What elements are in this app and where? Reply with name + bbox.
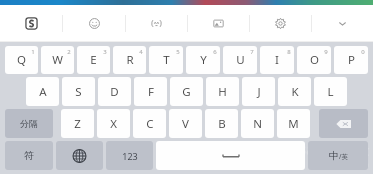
button[interactable]: W <box>41 46 74 74</box>
button[interactable]: X <box>97 109 130 138</box>
staticText: C <box>146 116 154 132</box>
button[interactable]: J <box>242 77 275 106</box>
button[interactable]: Z <box>61 109 94 138</box>
button[interactable]: T <box>149 46 183 74</box>
staticText: 0 <box>361 48 365 56</box>
staticText: P <box>348 52 355 68</box>
staticText: S <box>75 84 82 100</box>
button[interactable]: O <box>297 46 331 74</box>
button[interactable]: F <box>134 77 167 106</box>
button[interactable]: V <box>169 109 202 138</box>
button[interactable]: D <box>98 77 131 106</box>
staticText: M <box>288 116 299 132</box>
staticText: T <box>163 52 170 68</box>
button[interactable]: P <box>334 46 368 74</box>
button[interactable]: Backspace <box>319 109 368 138</box>
button[interactable]: B <box>205 109 238 138</box>
button[interactable]: Kaomoji <box>126 5 187 42</box>
button[interactable]: Sogou input method <box>0 5 62 42</box>
button[interactable]: C <box>133 109 166 138</box>
button[interactable]: 符 <box>5 141 53 170</box>
button[interactable]: 123 <box>106 141 153 170</box>
staticText: 符 <box>24 149 34 162</box>
staticText: Q <box>17 52 26 68</box>
button[interactable]: G <box>170 77 203 106</box>
staticText: /英 <box>339 152 348 161</box>
staticText: 9 <box>324 48 328 56</box>
button[interactable]: N <box>241 109 274 138</box>
staticText: 123 <box>122 150 138 162</box>
button[interactable]: 中 <box>308 141 368 170</box>
button[interactable]: Settings <box>250 5 311 42</box>
button[interactable]: L <box>314 77 347 106</box>
staticText: R <box>126 52 134 68</box>
staticText: G <box>182 84 191 100</box>
staticText: 4 <box>139 48 143 56</box>
staticText: A <box>39 84 47 100</box>
button[interactable]: Emoji <box>63 5 125 42</box>
staticText: I <box>275 52 279 68</box>
staticText: J <box>257 84 261 100</box>
button[interactable]: K <box>278 77 311 106</box>
staticText: W <box>52 52 63 68</box>
staticText: D <box>110 84 119 100</box>
staticText: O <box>310 52 319 68</box>
button[interactable]: R <box>113 46 146 74</box>
staticText: V <box>182 116 189 132</box>
button[interactable]: Y <box>186 46 220 74</box>
button[interactable]: H <box>206 77 239 106</box>
staticText: L <box>327 84 334 100</box>
button[interactable]: M <box>277 109 310 138</box>
staticText: E <box>90 52 97 68</box>
staticText: Z <box>74 116 81 132</box>
staticText: F <box>148 84 154 100</box>
staticText: B <box>218 116 226 132</box>
button[interactable]: A <box>26 77 59 106</box>
staticText: jingyan.baidu.com <box>308 160 369 170</box>
button[interactable]: Space <box>156 141 305 170</box>
button[interactable]: Switch language <box>56 141 103 170</box>
button[interactable]: E <box>77 46 110 74</box>
staticText: H <box>218 84 227 100</box>
staticText: 2 <box>67 48 71 56</box>
staticText: N <box>253 116 262 132</box>
staticText: X <box>110 116 117 132</box>
staticText: 1 <box>31 48 35 56</box>
staticText: K <box>291 84 299 100</box>
staticText: 5 <box>176 48 180 56</box>
staticText: 8 <box>287 48 291 56</box>
button[interactable]: 分隔 <box>5 109 53 138</box>
button[interactable]: Hide keyboard <box>312 5 373 42</box>
button[interactable]: I <box>260 46 294 74</box>
staticText: 6 <box>213 48 217 56</box>
staticText: 中 <box>329 149 339 162</box>
staticText: 3 <box>103 48 107 56</box>
button[interactable]: Q <box>5 46 38 74</box>
staticText: 分隔 <box>20 118 38 129</box>
staticText: U <box>236 52 245 68</box>
staticText: 7 <box>250 48 254 56</box>
staticText: Y <box>200 52 207 68</box>
button[interactable]: S <box>62 77 95 106</box>
button[interactable]: Pictures <box>188 5 249 42</box>
button[interactable]: U <box>223 46 257 74</box>
staticText: Baidu经验 <box>296 139 369 159</box>
